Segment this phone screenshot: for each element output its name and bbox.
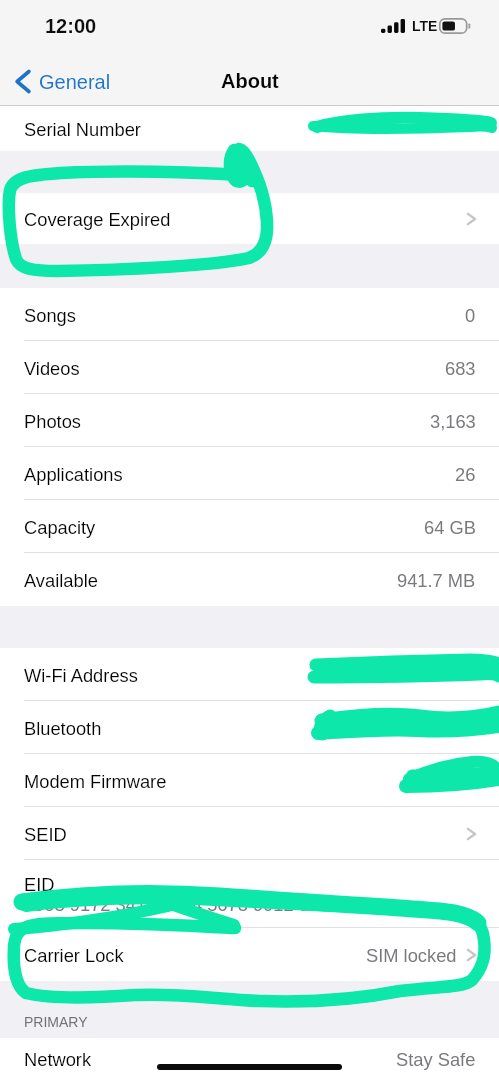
staticText: Network xyxy=(24,1049,92,1069)
staticText: Serial Number xyxy=(24,119,141,139)
staticText: Wi-Fi Address xyxy=(24,665,138,685)
staticText: Stay Safe xyxy=(396,1049,476,1069)
other: Back xyxy=(15,69,31,94)
button[interactable]: Bluetooth xyxy=(0,701,499,754)
staticText: 64 GB xyxy=(424,517,476,537)
button[interactable]: Songs xyxy=(0,288,499,341)
staticText: EID xyxy=(24,874,55,894)
staticText: Capacity xyxy=(24,517,96,537)
staticText: Coverage Expired xyxy=(24,209,171,229)
staticText: 26 xyxy=(455,464,476,484)
staticText: Carrier Lock xyxy=(24,945,124,965)
button[interactable]: Serial Number xyxy=(0,106,499,151)
button[interactable]: Wi-Fi Address xyxy=(0,648,499,701)
button[interactable]: Available xyxy=(0,553,499,606)
staticText: 12:00 xyxy=(45,15,97,37)
staticText: Songs xyxy=(24,305,76,325)
staticText: Bluetooth xyxy=(24,718,102,738)
button[interactable]: Capacity xyxy=(0,500,499,553)
button[interactable]: Videos xyxy=(0,341,499,394)
button[interactable]: Carrier Lock xyxy=(0,928,499,981)
button[interactable]: Back xyxy=(15,69,111,94)
staticText: 0 xyxy=(465,305,476,325)
button[interactable]: Applications xyxy=(0,447,499,500)
staticText: 941.7 MB xyxy=(397,570,476,590)
staticText: 3,163 xyxy=(430,411,476,431)
button[interactable]: Photos xyxy=(0,394,499,447)
staticText: General xyxy=(39,71,111,93)
button[interactable]: SEID xyxy=(0,807,499,860)
staticText: 8903 9172 3410 1234 5678 9012 3456 xyxy=(24,894,340,914)
staticText: Photos xyxy=(24,411,81,431)
staticText: PRIMARY xyxy=(24,1014,88,1030)
staticText: About xyxy=(221,70,279,92)
button[interactable]: EID xyxy=(0,860,499,928)
button[interactable]: Network xyxy=(0,1038,499,1080)
staticText: 683 xyxy=(445,358,476,378)
staticText: LTE xyxy=(412,18,438,34)
staticText: SIM locked xyxy=(366,945,457,965)
staticText: Modem Firmware xyxy=(24,771,167,791)
staticText: Applications xyxy=(24,464,123,484)
button[interactable]: Modem Firmware xyxy=(0,754,499,807)
staticText: Videos xyxy=(24,358,80,378)
button[interactable]: Coverage Expired xyxy=(0,193,499,244)
staticText: Available xyxy=(24,570,98,590)
staticText: SEID xyxy=(24,824,67,844)
